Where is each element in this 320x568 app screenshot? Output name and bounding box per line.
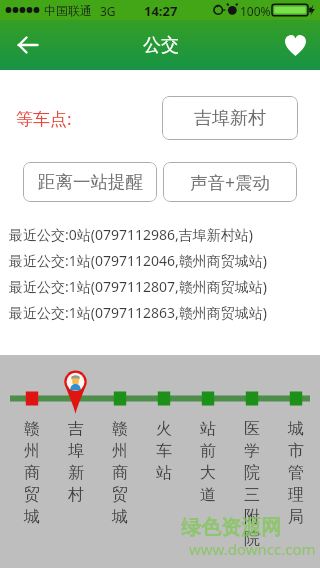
staticText: 管 [288, 463, 304, 483]
staticText: 村 [68, 485, 84, 505]
staticText: 附 [244, 507, 260, 527]
staticText: 理 [288, 485, 304, 505]
staticText: 院 [244, 529, 260, 549]
staticText: 最近公交:0站(0797112986,吉埠新村站) [9, 225, 253, 244]
staticText: 城 [112, 507, 128, 527]
button[interactable]: Favorite [273, 23, 317, 67]
staticText: 前 [200, 441, 216, 461]
button[interactable]: 声音+震动 [163, 162, 297, 202]
staticText: 14:27 [144, 2, 178, 20]
staticText: 赣 [112, 419, 128, 439]
staticText: 吉 [68, 419, 84, 439]
staticText: 最近公交:1站(0797112863,赣州商贸城站) [9, 303, 267, 322]
staticText: www.downcc.com [189, 539, 316, 559]
staticText: 医 [244, 419, 260, 439]
staticText: 绿色资源网 [181, 515, 281, 540]
button[interactable]: 距离一站提醒 [23, 162, 157, 202]
staticText: 州 [24, 441, 40, 461]
staticText: 赣 [24, 419, 40, 439]
staticText: 最近公交:1站(0797112807,赣州商贸城站) [9, 277, 267, 296]
staticText: 火 [156, 419, 172, 439]
staticText: 城 [24, 507, 40, 527]
staticText: 公交 [143, 34, 179, 57]
staticText: 市 [288, 441, 304, 461]
staticText: 大 [200, 463, 216, 483]
staticText: 声音+震动 [190, 170, 271, 194]
staticText: 站 [156, 463, 172, 483]
staticText: 院 [244, 463, 260, 483]
staticText: 三 [244, 485, 260, 505]
staticText: 学 [244, 441, 260, 461]
staticText: 埠 [68, 441, 84, 461]
staticText: 最近公交:1站(0797112046,赣州商贸城站) [9, 251, 267, 270]
staticText: 州 [112, 441, 128, 461]
button[interactable]: Back [6, 23, 50, 67]
staticText: 100% [240, 3, 271, 19]
staticText: 贸 [112, 485, 128, 505]
staticText: 贸 [24, 485, 40, 505]
staticText: 距离一站提醒 [38, 171, 143, 193]
staticText: 中国联通 [44, 3, 92, 18]
staticText: 吉埠新村 [194, 107, 266, 130]
staticText: 等车点: [16, 107, 72, 130]
button[interactable]: 吉埠新村 [162, 96, 298, 140]
staticText: 车 [156, 441, 172, 461]
staticText: 道 [200, 485, 216, 505]
staticText: 站 [200, 419, 216, 439]
staticText: 商 [112, 463, 128, 483]
staticText: 3G [100, 3, 116, 19]
staticText: 新 [68, 463, 84, 483]
staticText: 城 [288, 419, 304, 439]
staticText: 局 [288, 507, 304, 527]
staticText: 商 [24, 463, 40, 483]
